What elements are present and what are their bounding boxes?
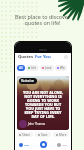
staticText: Save xyxy=(41,133,48,137)
staticText: Life xyxy=(31,66,37,70)
button[interactable]: Wo xyxy=(55,65,67,71)
staticText: For You xyxy=(35,54,51,60)
staticText: Love xyxy=(45,66,52,70)
button[interactable]: All xyxy=(17,65,25,71)
staticText: John Thomas xyxy=(28,122,46,126)
button[interactable]: Save xyxy=(35,132,51,137)
button[interactable]: Share xyxy=(17,132,33,137)
staticText: Wo xyxy=(60,66,65,70)
button[interactable]: Home xyxy=(18,142,30,148)
button[interactable]: Profile xyxy=(64,55,68,59)
staticText: Motivation xyxy=(21,79,35,83)
button[interactable]: Motivation xyxy=(19,78,37,84)
staticText: More xyxy=(59,133,67,137)
staticText: Share xyxy=(22,133,31,137)
button[interactable]: Love xyxy=(40,65,54,71)
button[interactable]: More xyxy=(53,132,69,137)
staticText: Best place to discover quotes on life! xyxy=(15,13,70,27)
staticText: Quotes xyxy=(18,54,34,60)
staticText: All xyxy=(19,66,23,70)
staticText: YOU ARE NOT ALONE, NOT EVERYTHING IS GOI… xyxy=(22,90,64,119)
button[interactable]: Add quote xyxy=(40,141,47,148)
button[interactable]: Profile xyxy=(56,142,68,148)
button[interactable]: Life xyxy=(26,65,39,71)
